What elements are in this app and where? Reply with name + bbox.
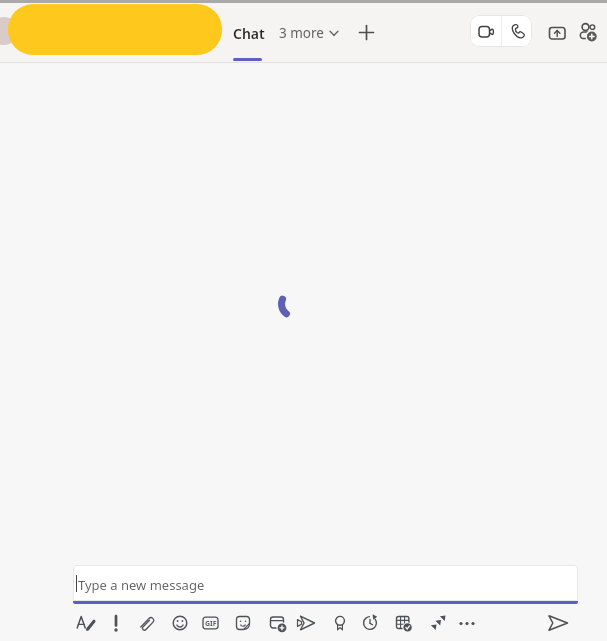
button[interactable] xyxy=(326,609,354,637)
button[interactable] xyxy=(453,609,481,637)
button[interactable] xyxy=(197,609,225,637)
button[interactable] xyxy=(133,609,161,637)
button[interactable] xyxy=(73,565,578,601)
button[interactable] xyxy=(8,4,222,55)
button[interactable] xyxy=(544,609,572,637)
staticText: GIF xyxy=(205,619,217,629)
button[interactable] xyxy=(424,609,452,637)
button[interactable] xyxy=(71,609,99,637)
button[interactable] xyxy=(102,609,130,637)
button[interactable] xyxy=(545,21,569,45)
staticText: 3 more xyxy=(279,24,324,42)
button[interactable] xyxy=(226,10,270,54)
staticText: Chat xyxy=(233,24,265,43)
staticText: Type a new message xyxy=(78,576,205,594)
button[interactable] xyxy=(501,15,532,47)
button[interactable] xyxy=(576,21,600,45)
button[interactable] xyxy=(352,10,382,54)
button[interactable] xyxy=(229,609,257,637)
button[interactable] xyxy=(470,15,501,47)
button[interactable] xyxy=(389,609,417,637)
button[interactable] xyxy=(272,10,348,54)
button[interactable] xyxy=(293,609,321,637)
button[interactable] xyxy=(356,609,384,637)
button[interactable] xyxy=(263,609,291,637)
button[interactable] xyxy=(166,609,194,637)
